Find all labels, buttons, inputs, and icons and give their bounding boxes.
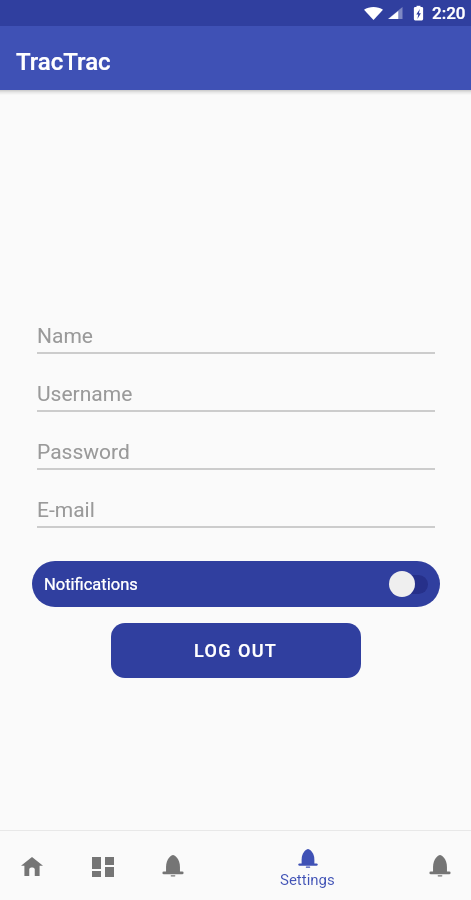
button[interactable]: LOG OUT [111,623,361,678]
staticText: LOG OUT [194,640,278,661]
staticText: E-mail [37,498,95,523]
staticText: Settings [280,871,335,889]
button[interactable]: Notifications [32,561,440,607]
staticText: Notifications [44,575,138,594]
staticText: 2:20 [432,3,466,23]
staticText: Name [37,324,93,349]
button[interactable]: Alerts [409,831,471,900]
button[interactable]: Home [0,831,64,900]
staticText: Password [37,440,130,465]
button[interactable]: Dashboard [64,831,140,900]
button[interactable]: Settings [206,831,409,900]
staticText: TracTrac [16,48,111,76]
staticText: Username [37,382,133,407]
button[interactable]: Notifications [140,831,206,900]
